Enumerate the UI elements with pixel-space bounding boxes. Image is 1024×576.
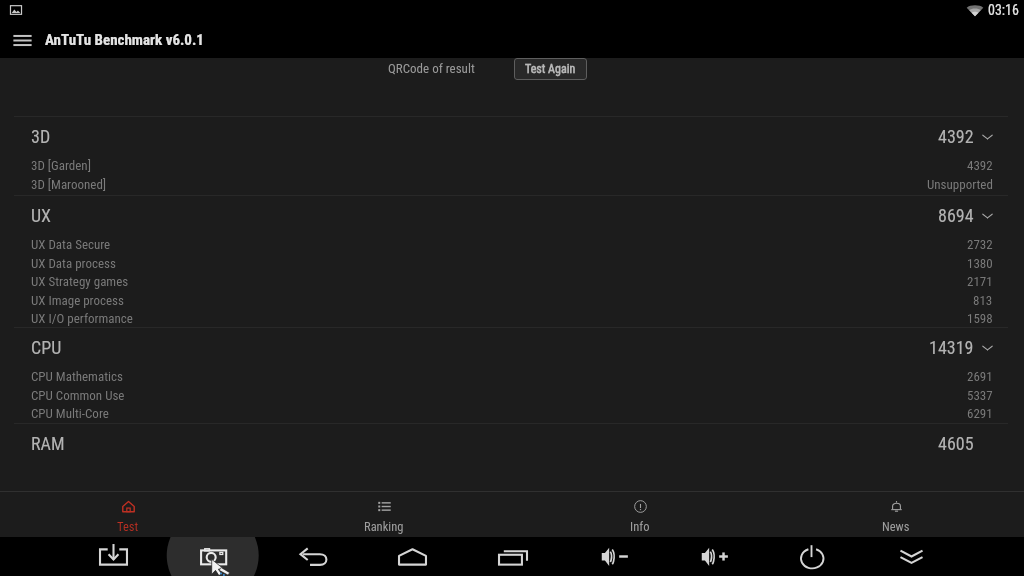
staticText: 5337 [967,388,993,403]
button[interactable]: Home [390,537,434,576]
staticText: 4392 [967,158,993,173]
staticText: 3D [Marooned] [31,177,107,192]
staticText: 2732 [967,237,993,252]
button[interactable]: Test [0,492,256,537]
staticText: CPU Mathematics [31,369,123,384]
staticText: UX I/O performance [31,311,133,326]
staticText: 14319 [929,337,974,358]
staticText: 4392 [938,126,974,147]
staticText: UX [31,205,52,226]
button[interactable]: Test Again [514,58,587,80]
staticText: 813 [973,293,993,308]
staticText: 1598 [967,311,993,326]
button[interactable]: Back [291,537,335,576]
staticText: 2691 [967,369,993,384]
staticText: Unsupported [927,177,993,192]
staticText: UX Strategy games [31,274,129,289]
staticText: 6291 [967,406,993,421]
staticText: CPU Multi-Core [31,406,109,421]
staticText: 3D [Garden] [31,158,91,173]
staticText: Ranking [364,519,404,534]
button[interactable]: CPU [0,328,1024,367]
button[interactable]: Collapse [889,537,933,576]
staticText: 4605 [938,433,974,454]
button[interactable]: Download [91,537,135,576]
button[interactable]: Volume down [590,537,634,576]
button[interactable]: Screenshot [191,537,235,576]
button[interactable]: News [768,492,1024,537]
button[interactable]: RAM [0,424,1024,463]
staticText: UX Data Secure [31,237,111,252]
button[interactable]: Ranking [256,492,512,537]
staticText: News [882,519,910,534]
staticText: 3D [31,126,51,147]
staticText: CPU Common Use [31,388,125,403]
staticText: RAM [31,433,65,454]
staticText: AnTuTu Benchmark v6.0.1 [45,31,204,49]
staticText: UX Data process [31,256,116,271]
button[interactable]: Info [512,492,768,537]
button[interactable]: UX [0,196,1024,235]
staticText: Test [117,519,139,534]
button[interactable]: Open navigation menu [4,22,40,58]
staticText: 8694 [938,205,974,226]
staticText: 03:16 [988,2,1019,18]
button[interactable]: 3D [0,117,1024,156]
staticText: 1380 [967,256,993,271]
staticText: 2171 [967,274,993,289]
button[interactable]: Volume up [690,537,734,576]
staticText: UX Image process [31,293,124,308]
staticText: CPU [31,337,62,358]
button[interactable]: Power [789,537,833,576]
staticText: Test Again [525,62,576,76]
button[interactable]: Recents [490,537,534,576]
staticText: Info [630,519,650,534]
button[interactable]: QRCode of result [388,61,475,76]
